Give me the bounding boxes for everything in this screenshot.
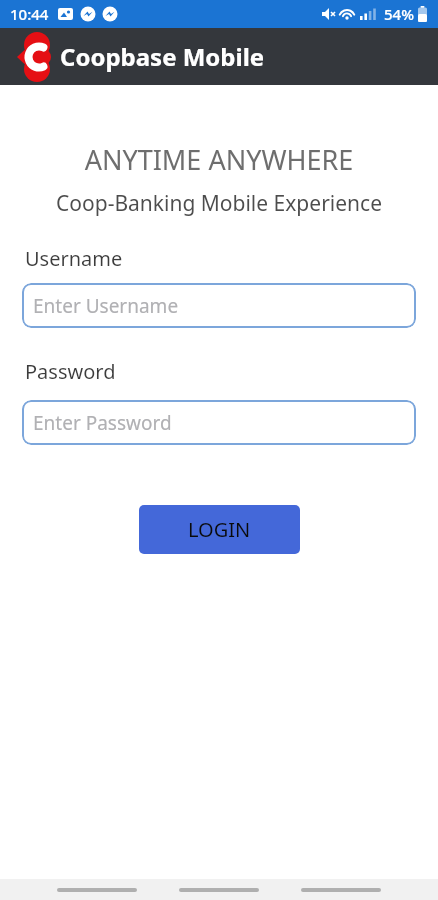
staticText: Enter Username: [33, 293, 179, 319]
staticText: Enter Password: [33, 410, 172, 436]
button[interactable]: Enter Password: [22, 400, 416, 445]
button[interactable]: [301, 888, 381, 892]
staticText: Coopbase Mobile: [60, 40, 265, 73]
staticText: Coop-Banking Mobile Experience: [0, 189, 438, 218]
staticText: 10:44: [10, 4, 49, 24]
button[interactable]: [57, 888, 137, 892]
button[interactable]: [179, 888, 259, 892]
staticText: LOGIN: [188, 516, 251, 543]
staticText: ANYTIME ANYWHERE: [0, 141, 438, 178]
staticText: Username: [25, 245, 123, 272]
staticText: Password: [25, 358, 116, 385]
button[interactable]: Enter Username: [22, 283, 416, 328]
staticText: 54%: [384, 4, 414, 24]
button[interactable]: LOGIN: [139, 505, 300, 554]
